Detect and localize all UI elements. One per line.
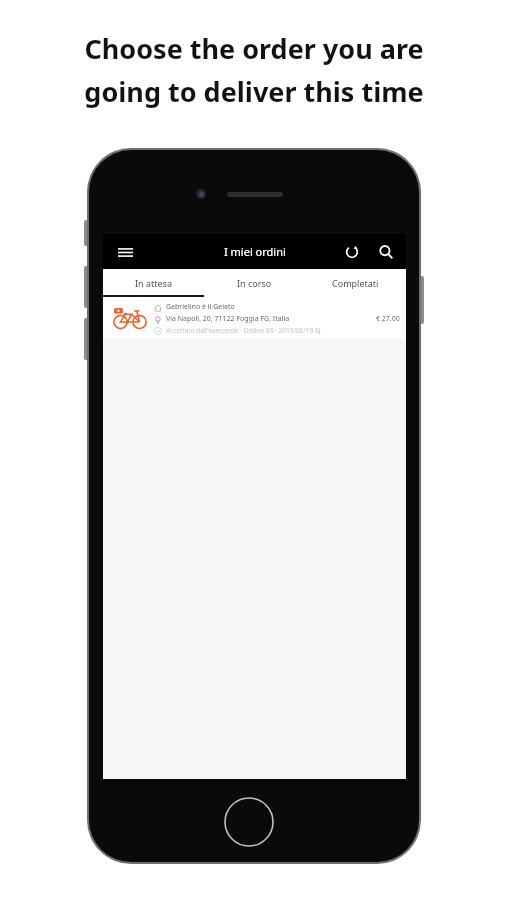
button[interactable]: In corso (204, 269, 305, 297)
button[interactable]: Gabrielino è il Gelato (103, 297, 406, 339)
staticText: Via Napoli, 20, 71122 Foggia FG, Italia (166, 314, 290, 324)
staticText: € 27.00 (376, 314, 400, 324)
staticText: going to deliver this time (84, 73, 424, 110)
button[interactable]: Home (223, 796, 275, 848)
staticText: Gabrielino è il Gelato (166, 302, 235, 312)
button[interactable]: Menu (111, 238, 139, 266)
button[interactable]: In attesa (103, 269, 204, 297)
staticText: I miei ordini (224, 244, 286, 259)
button[interactable]: Refresh (338, 238, 366, 266)
staticText: Completati (332, 277, 379, 289)
staticText: Accettato dall'esercente · Ordine 86 · 2… (166, 326, 321, 335)
staticText: Choose the order you are (84, 30, 424, 67)
button[interactable]: Completati (305, 269, 406, 297)
staticText: In corso (237, 277, 272, 289)
staticText: In attesa (135, 277, 172, 289)
button[interactable]: Search (372, 238, 400, 266)
